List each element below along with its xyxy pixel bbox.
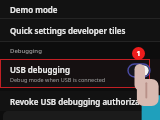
staticText: Debugging bbox=[10, 47, 42, 55]
staticText: Demo mode bbox=[10, 4, 58, 15]
button[interactable]: Toggle USB debugging bbox=[128, 64, 150, 77]
button[interactable]: Quick settings developer tiles bbox=[0, 19, 160, 41]
staticText: Quick settings developer tiles bbox=[10, 25, 126, 36]
staticText: USB debugging bbox=[10, 64, 70, 75]
staticText: Debug mode when USB is connected bbox=[10, 76, 106, 83]
staticText: Revoke USB debugging authorizations bbox=[10, 96, 160, 107]
staticText: 1 bbox=[136, 49, 141, 59]
button[interactable]: Demo mode bbox=[0, 0, 160, 18]
button[interactable]: USB debugging bbox=[0, 59, 160, 88]
button[interactable]: Revoke USB debugging authorizations bbox=[0, 91, 160, 111]
